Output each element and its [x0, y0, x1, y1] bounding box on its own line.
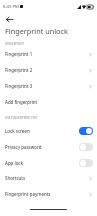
button[interactable]: Privacy password: [0, 143, 97, 159]
button[interactable]: Back: [3, 13, 15, 25]
button[interactable]: Fingerprint 3: [0, 83, 97, 99]
staticText: FINGERPRINT: [5, 42, 25, 46]
staticText: Fingerprint unlock: [5, 26, 68, 36]
staticText: Add fingerprint: [5, 99, 38, 105]
staticText: USE FINGERPRINT FOR: [5, 116, 38, 120]
staticText: Fingerprint 3: [5, 83, 33, 89]
staticText: Privacy password: [5, 144, 42, 150]
staticText: Shortcuts: [5, 175, 26, 181]
staticText: App lock: [5, 160, 23, 166]
staticText: Fingerprint payments: [5, 191, 51, 197]
button[interactable]: Shortcuts: [0, 175, 97, 191]
button[interactable]: Fingerprint payments: [0, 191, 97, 207]
button[interactable]: App lock: [0, 159, 97, 175]
button[interactable]: Fingerprint 1: [0, 51, 97, 67]
staticText: Lock screen: [5, 128, 30, 134]
staticText: Fingerprint 2: [5, 67, 33, 73]
staticText: Fingerprint 1: [5, 51, 33, 57]
button[interactable]: Fingerprint 2: [0, 67, 97, 83]
button[interactable]: Add fingerprint: [0, 99, 97, 115]
staticText: 6:43 PM: [3, 4, 19, 10]
button[interactable]: Lock screen: [0, 127, 97, 143]
